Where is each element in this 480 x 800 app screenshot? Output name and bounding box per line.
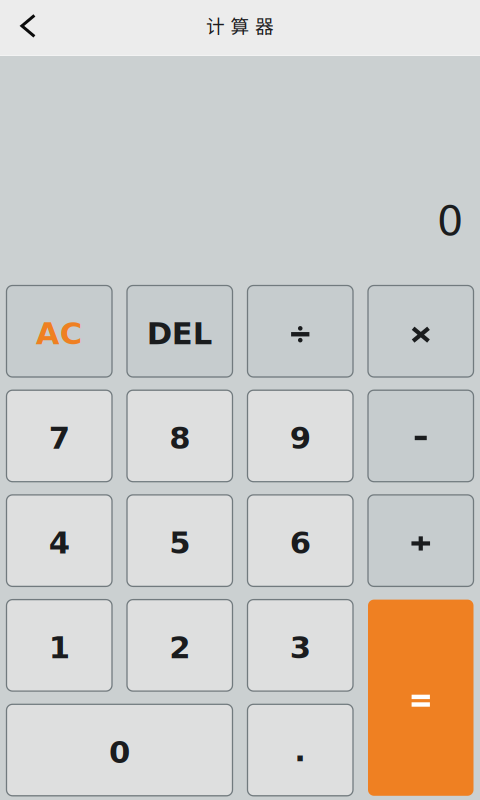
button[interactable]: AC xyxy=(6,285,112,377)
button[interactable]: 6 xyxy=(247,495,353,586)
button[interactable]: Multiply xyxy=(368,285,473,377)
staticText: 8 xyxy=(169,420,190,456)
staticText: 2 xyxy=(169,630,190,665)
button[interactable]: Add xyxy=(368,495,473,586)
button[interactable]: 9 xyxy=(247,390,353,482)
staticText: 6 xyxy=(290,525,311,561)
staticText: 7 xyxy=(49,420,70,456)
staticText: 0 xyxy=(109,734,130,770)
button[interactable]: Back xyxy=(0,0,54,55)
staticText: 0 xyxy=(437,197,463,245)
staticText: 9 xyxy=(290,420,311,456)
button[interactable]: 8 xyxy=(127,390,232,482)
staticText: 1 xyxy=(49,630,70,665)
button[interactable]: 5 xyxy=(127,495,232,586)
button[interactable]: 4 xyxy=(6,495,112,586)
button[interactable]: DEL xyxy=(127,285,232,377)
button[interactable]: . xyxy=(247,704,353,796)
button[interactable]: Subtract xyxy=(368,390,473,482)
staticText: 计算器 xyxy=(206,11,274,38)
staticText: 3 xyxy=(290,630,311,665)
button[interactable]: 7 xyxy=(6,390,112,482)
button[interactable]: 3 xyxy=(247,600,353,691)
staticText: DEL xyxy=(147,316,213,351)
button[interactable]: Divide xyxy=(247,285,353,377)
staticText: 5 xyxy=(169,525,190,561)
staticText: . xyxy=(294,733,306,768)
button[interactable]: 2 xyxy=(127,600,232,691)
button[interactable]: 1 xyxy=(6,600,112,691)
staticText: 4 xyxy=(49,525,70,561)
staticText: AC xyxy=(36,316,83,351)
button[interactable]: 0 xyxy=(6,704,232,796)
button[interactable]: Equals xyxy=(368,600,473,796)
